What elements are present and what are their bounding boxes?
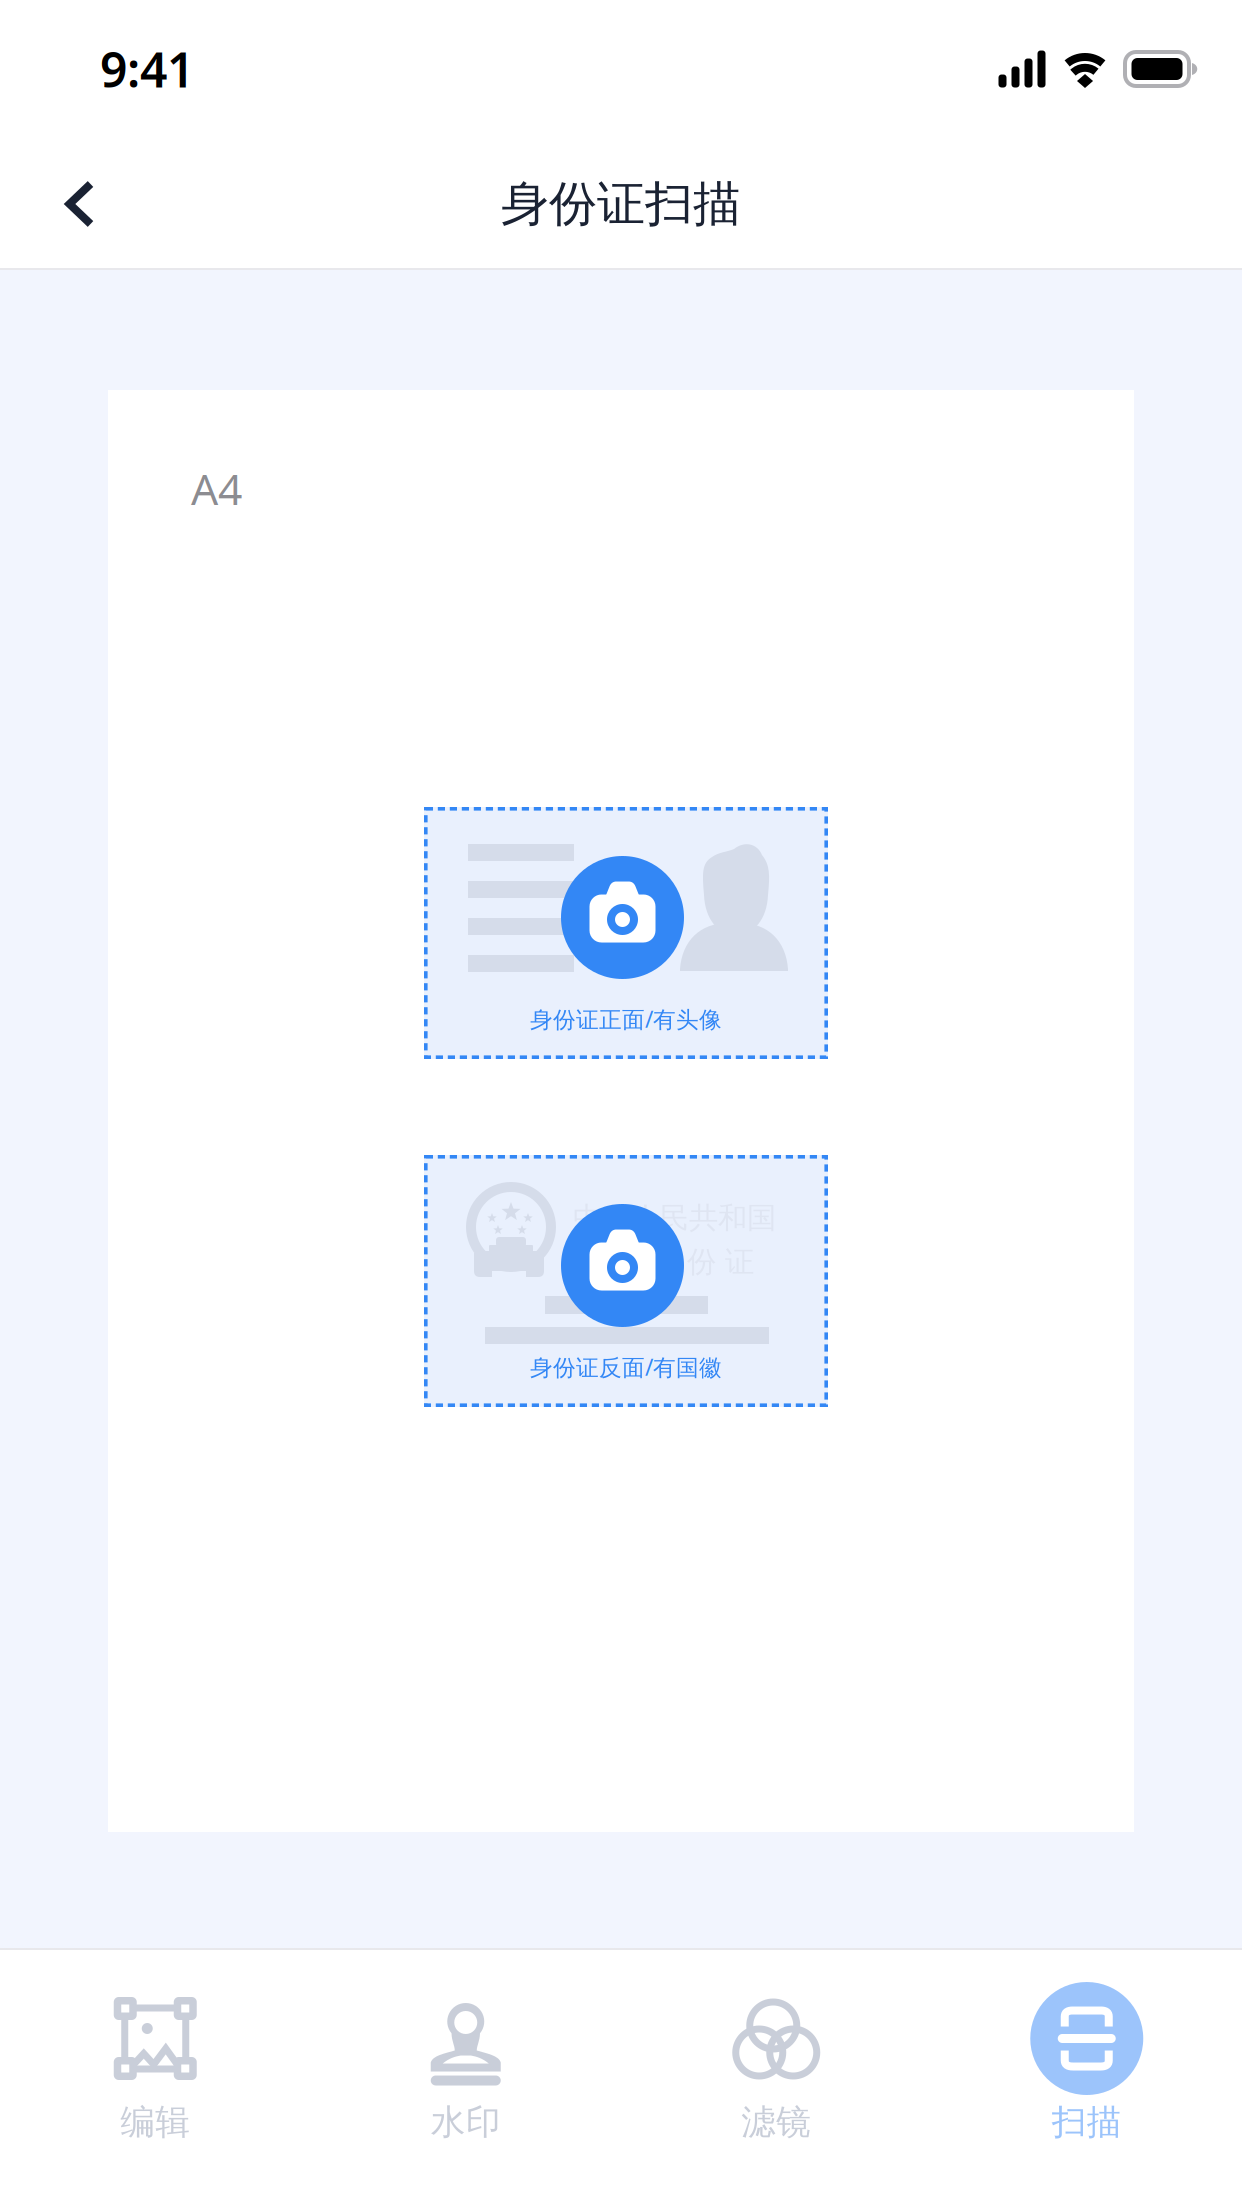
button[interactable]: 身份证正面/有头像 — [424, 807, 828, 1059]
button[interactable]: Back — [16, 140, 144, 268]
button[interactable]: 扫描 — [931, 1982, 1242, 2144]
staticText: 9:41 — [100, 37, 194, 101]
staticText: 编辑 — [120, 2101, 190, 2144]
staticText: 居 民 身 份 证 — [573, 1244, 754, 1280]
button[interactable]: 中华人民共和国 — [424, 1155, 828, 1407]
staticText: A4 — [191, 460, 242, 517]
staticText: 水印 — [431, 2101, 501, 2144]
staticText: 身份证反面/有国徽 — [530, 1352, 722, 1382]
button[interactable]: 滤镜 — [621, 1982, 931, 2144]
staticText: 扫描 — [1052, 2101, 1122, 2144]
button[interactable]: 水印 — [310, 1982, 621, 2144]
staticText: 滤镜 — [741, 2101, 811, 2144]
staticText: 身份证正面/有头像 — [530, 1004, 722, 1034]
button[interactable]: 编辑 — [0, 1982, 310, 2144]
staticText: 身份证扫描 — [501, 174, 741, 233]
staticText: 中华人民共和国 — [573, 1200, 776, 1236]
